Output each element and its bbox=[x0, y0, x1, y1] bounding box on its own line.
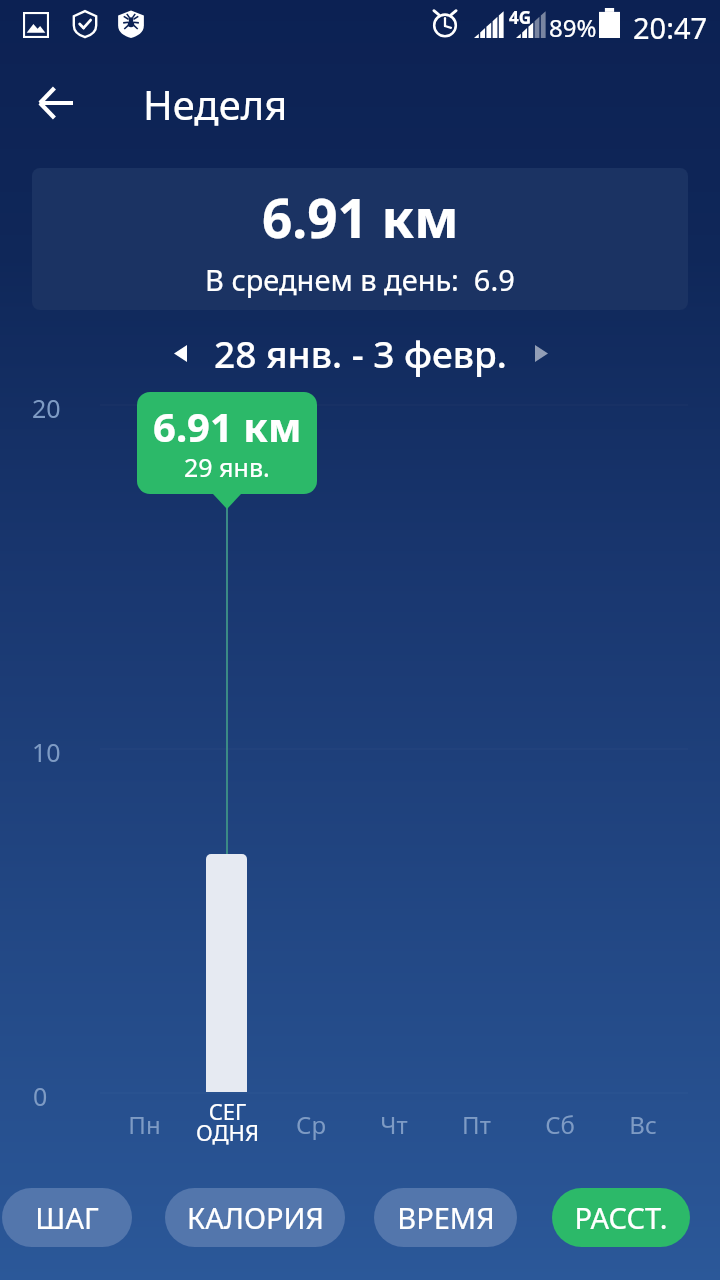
button[interactable]: Next week bbox=[515, 327, 567, 379]
staticText: 0 bbox=[33, 1079, 48, 1113]
staticText: 4G bbox=[509, 6, 532, 29]
button[interactable]: Ср bbox=[269, 1108, 352, 1154]
staticText: 10 bbox=[32, 735, 61, 769]
button[interactable]: Previous week bbox=[154, 327, 206, 379]
staticText: 89% bbox=[549, 11, 597, 44]
staticText: В среднем в день: 6.9 bbox=[205, 260, 515, 299]
button[interactable]: СЕГ ОДНЯ bbox=[186, 1096, 269, 1154]
staticText: 6.91 км bbox=[262, 181, 459, 253]
button[interactable]: Чт bbox=[352, 1108, 435, 1154]
staticText: Ср bbox=[296, 1108, 326, 1141]
button[interactable]: Today 6.91 km bbox=[206, 854, 247, 1092]
staticText: 6.91 км bbox=[153, 399, 302, 453]
staticText: ШАГ bbox=[35, 1198, 99, 1237]
staticText: Неделя bbox=[143, 77, 288, 131]
staticText: 20:47 bbox=[633, 8, 708, 47]
staticText: 20 bbox=[32, 391, 61, 425]
staticText: Пт bbox=[462, 1108, 491, 1141]
staticText: СЕГ ОДНЯ bbox=[196, 1096, 259, 1148]
button[interactable]: Вс bbox=[601, 1108, 684, 1154]
staticText: 29 янв. bbox=[184, 450, 270, 484]
button[interactable]: Пт bbox=[435, 1108, 518, 1154]
button[interactable]: 6.91 км bbox=[137, 392, 317, 494]
button[interactable]: КАЛОРИЯ bbox=[165, 1188, 345, 1247]
staticText: РАССТ. bbox=[574, 1198, 668, 1237]
staticText: Сб bbox=[545, 1108, 575, 1141]
staticText: Вс bbox=[629, 1108, 657, 1141]
staticText: КАЛОРИЯ bbox=[187, 1198, 324, 1237]
staticText: Пн bbox=[128, 1108, 161, 1141]
button[interactable]: ШАГ bbox=[2, 1188, 132, 1247]
button[interactable]: РАССТ. bbox=[552, 1188, 690, 1247]
button[interactable]: ВРЕМЯ bbox=[374, 1188, 517, 1247]
button[interactable]: Сб bbox=[518, 1108, 601, 1154]
button[interactable]: Пн bbox=[103, 1108, 186, 1154]
staticText: ВРЕМЯ bbox=[397, 1198, 495, 1237]
button[interactable]: 6.91 км bbox=[32, 168, 688, 310]
staticText: Чт bbox=[380, 1108, 408, 1141]
staticText: 28 янв. - 3 февр. bbox=[214, 328, 507, 378]
button[interactable]: Back bbox=[19, 67, 91, 139]
